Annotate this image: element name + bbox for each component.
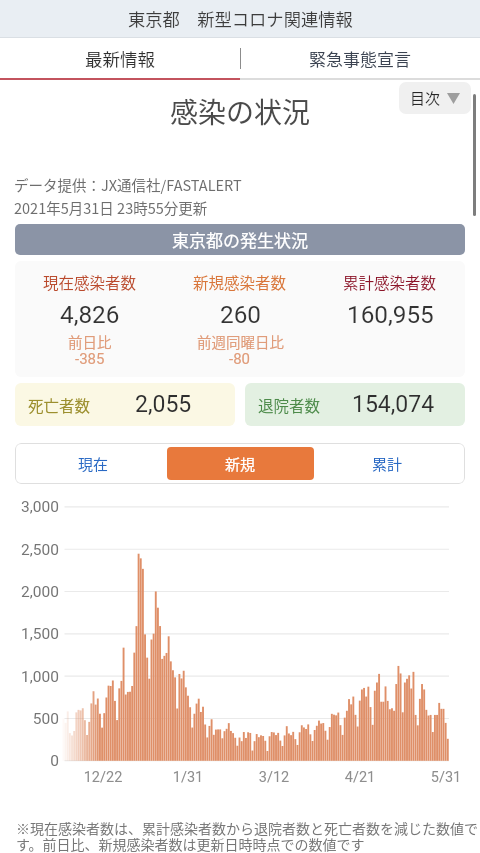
- staticText: 死亡者数: [28, 394, 91, 416]
- staticText: 退院者数: [258, 394, 321, 416]
- staticText: 累計: [372, 453, 403, 475]
- staticText: 500: [0, 710, 59, 728]
- button[interactable]: 新規: [167, 447, 314, 480]
- staticText: データ提供：JX通信社/FASTALERT: [14, 174, 242, 195]
- staticText: 4/21: [330, 769, 390, 786]
- staticText: 3,000: [0, 498, 59, 516]
- button[interactable]: 累計: [314, 447, 461, 480]
- staticText: 前日比: [68, 331, 112, 352]
- button[interactable]: 現在: [19, 447, 167, 480]
- staticText: 新規: [225, 453, 256, 475]
- button[interactable]: 目次: [399, 82, 471, 114]
- staticText: 1,500: [0, 625, 59, 643]
- staticText: 2021年5月31日 23時55分更新: [14, 197, 208, 218]
- staticText: 154,074: [352, 391, 435, 418]
- staticText: 現在: [78, 453, 109, 475]
- staticText: 160,955: [347, 300, 434, 328]
- button[interactable]: 死亡者数: [15, 383, 235, 426]
- button[interactable]: 緊急事態宣言: [240, 38, 480, 78]
- button[interactable]: 最新情報: [0, 38, 240, 78]
- staticText: 目次: [410, 87, 441, 109]
- staticText: 新規感染者数: [193, 271, 287, 293]
- staticText: -385: [75, 350, 105, 368]
- staticText: -80: [229, 350, 251, 368]
- staticText: 東京都の発生状況: [172, 227, 308, 252]
- staticText: 最新情報: [85, 46, 155, 71]
- staticText: 2,000: [0, 583, 59, 601]
- staticText: 前週同曜日比: [197, 331, 284, 352]
- staticText: 2,055: [135, 391, 192, 418]
- staticText: 260: [220, 300, 261, 328]
- staticText: 緊急事態宣言: [309, 46, 411, 71]
- staticText: 3/12: [244, 769, 304, 786]
- staticText: 東京都 新型コロナ関連情報: [128, 6, 353, 31]
- staticText: 現在感染者数: [43, 271, 137, 293]
- staticText: 0: [0, 752, 59, 770]
- button[interactable]: 退院者数: [245, 383, 465, 426]
- staticText: ※現在感染者数は、累計感染者数から退院者数と死亡者数を減じた数値で す。前日比、…: [16, 818, 478, 853]
- staticText: 2,500: [0, 541, 59, 559]
- staticText: 4,826: [60, 300, 120, 328]
- staticText: 累計感染者数: [343, 271, 437, 293]
- staticText: 5/31: [416, 769, 476, 786]
- staticText: 1/31: [158, 769, 218, 786]
- staticText: 1,000: [0, 668, 59, 686]
- staticText: 感染の状況: [0, 91, 480, 132]
- staticText: 12/22: [73, 769, 133, 786]
